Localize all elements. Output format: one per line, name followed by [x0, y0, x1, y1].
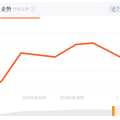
staticText: 2 [116, 95, 118, 100]
staticText: 近7天对比 [111, 5, 120, 13]
staticText: 2020年第46周 [22, 95, 46, 100]
staticText: ⓘ [30, 6, 35, 12]
staticText: 2020年第48周 [60, 95, 84, 100]
staticText: 价格走势 [13, 6, 29, 11]
staticText: 走势 [1, 6, 11, 12]
button[interactable]: 近7天对比 [89, 5, 118, 13]
